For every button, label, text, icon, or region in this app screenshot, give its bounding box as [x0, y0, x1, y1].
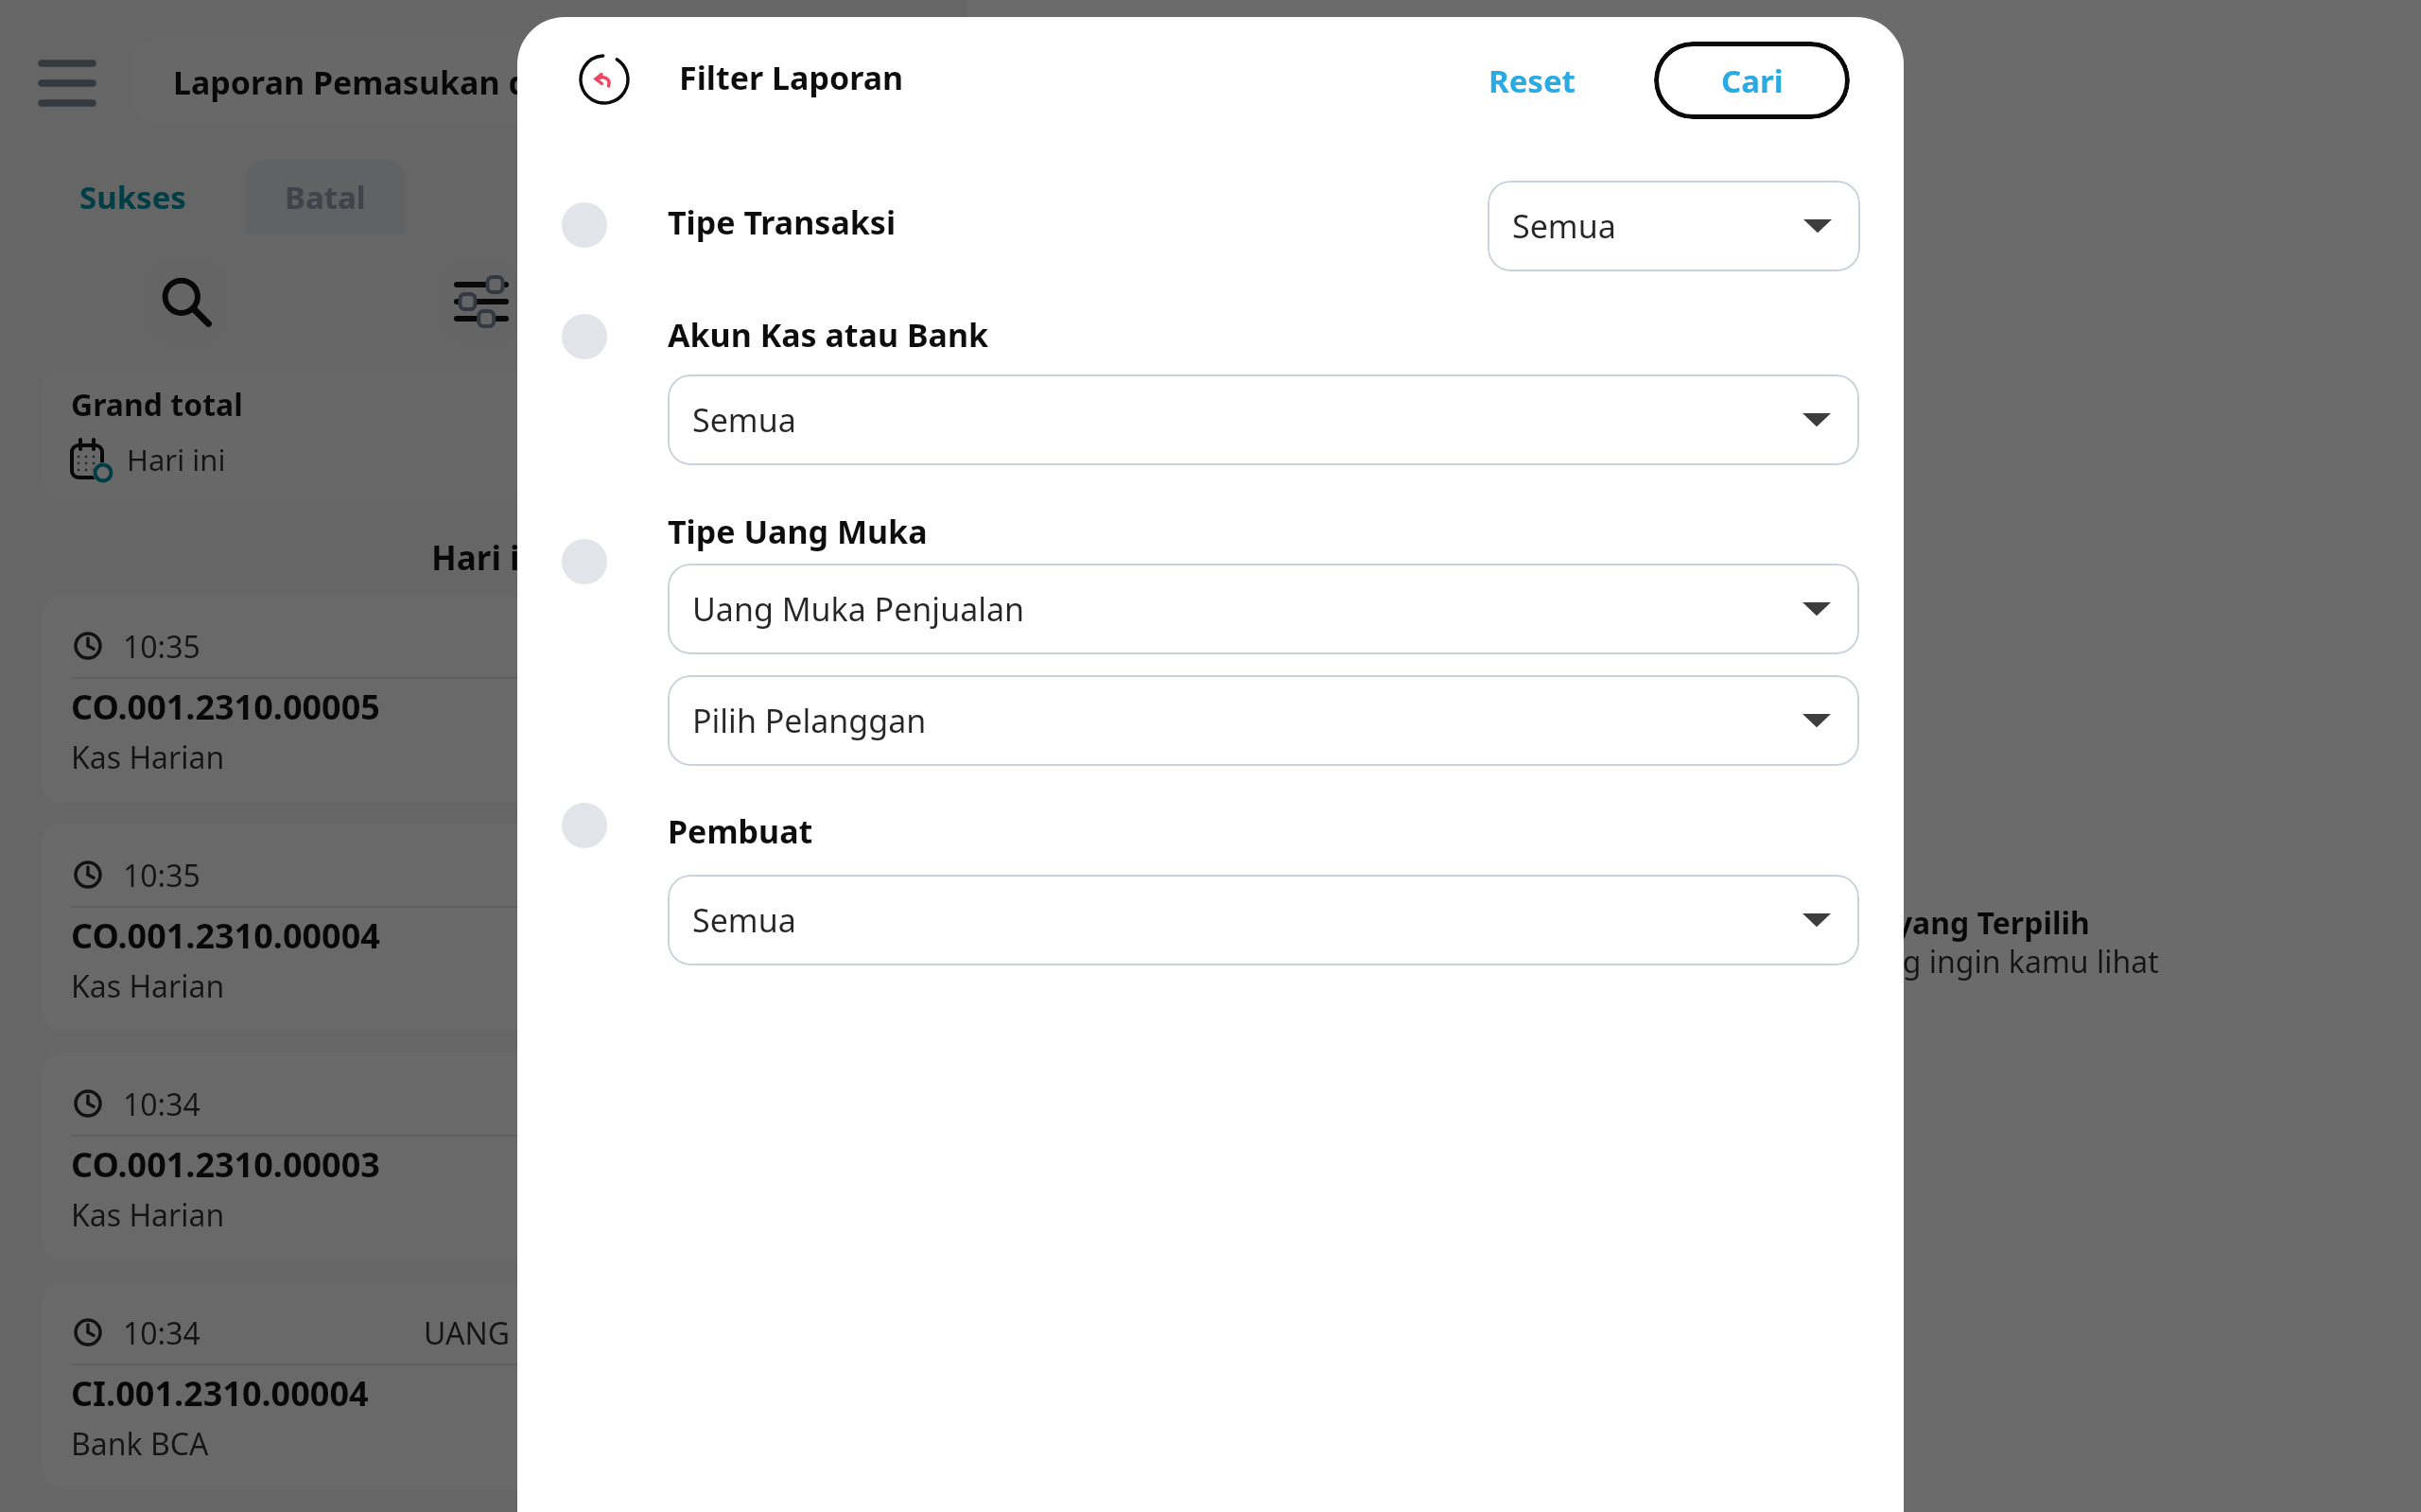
staticText: Hari ini: [431, 535, 551, 581]
staticText: Grand total: [71, 384, 243, 426]
staticText: CO.001.2310.00005: [71, 684, 380, 730]
button[interactable]: 10:34: [42, 1052, 925, 1260]
staticText: Batal: [285, 176, 366, 218]
button[interactable]: Menu: [23, 40, 112, 129]
staticText: Tidak ada Filter yang Terpilih: [1654, 902, 2090, 944]
staticText: Kas Harian: [71, 737, 225, 778]
staticText: Kas Harian: [71, 965, 225, 1007]
staticText: Filter Laporan: [679, 56, 904, 99]
staticText: Akun Kas atau Bank: [668, 313, 989, 356]
staticText: Semua: [1512, 204, 1616, 248]
button[interactable]: Pilih Pelanggan: [668, 675, 1859, 766]
staticText: CO.001.2310.00004: [71, 912, 380, 959]
staticText: Sukses: [79, 176, 186, 218]
staticText: Pilih filter laporan yang ingin kamu lih…: [1592, 941, 2159, 982]
staticText: CO.001.2310.00003: [71, 1141, 380, 1188]
staticText: 10:35: [123, 626, 200, 668]
button[interactable]: Reset: [1489, 60, 1576, 102]
button[interactable]: Semua: [668, 374, 1859, 465]
staticText: Semua: [692, 898, 796, 942]
staticText: CI.001.2310.00004: [71, 1370, 369, 1416]
button[interactable]: Grand total: [42, 370, 925, 498]
button[interactable]: Filter: [441, 261, 522, 342]
staticText: Bank BCA: [71, 1423, 209, 1465]
button[interactable]: Cari: [1654, 42, 1850, 119]
staticText: Kas Harian: [71, 1194, 225, 1236]
staticText: 10:35: [123, 855, 200, 896]
button[interactable]: Semua: [668, 875, 1859, 965]
staticText: Uang Muka Penjualan: [692, 587, 1025, 631]
staticText: Hari ini: [127, 440, 226, 479]
staticText: Reset: [1489, 60, 1576, 102]
staticText: UANG MUKA PENJUALAN: [424, 1312, 779, 1354]
button[interactable]: 10:34: [42, 1281, 925, 1489]
button[interactable]: 10:35: [42, 824, 925, 1032]
staticText: Laporan Pemasukan dan Pengeluaran: [173, 61, 781, 104]
staticText: Pembuat: [668, 809, 813, 853]
staticText: Cari: [1721, 60, 1784, 102]
staticText: Semua: [692, 398, 796, 442]
staticText: 10:34: [123, 1312, 200, 1354]
button[interactable]: Laporan Pemasukan dan Pengeluaran: [134, 39, 925, 125]
staticText: Tipe Transaksi: [668, 200, 897, 244]
button[interactable]: Batal: [246, 160, 405, 235]
button[interactable]: Sukses: [40, 160, 226, 235]
staticText: Tipe Uang Muka: [668, 510, 928, 553]
button[interactable]: Back: [562, 37, 647, 122]
button[interactable]: Uang Muka Penjualan: [668, 564, 1859, 654]
button[interactable]: Semua: [1488, 181, 1860, 271]
button[interactable]: Search: [146, 261, 227, 342]
staticText: Pilih Pelanggan: [692, 699, 927, 742]
staticText: 10:34: [123, 1084, 200, 1125]
button[interactable]: 10:35: [42, 595, 925, 803]
